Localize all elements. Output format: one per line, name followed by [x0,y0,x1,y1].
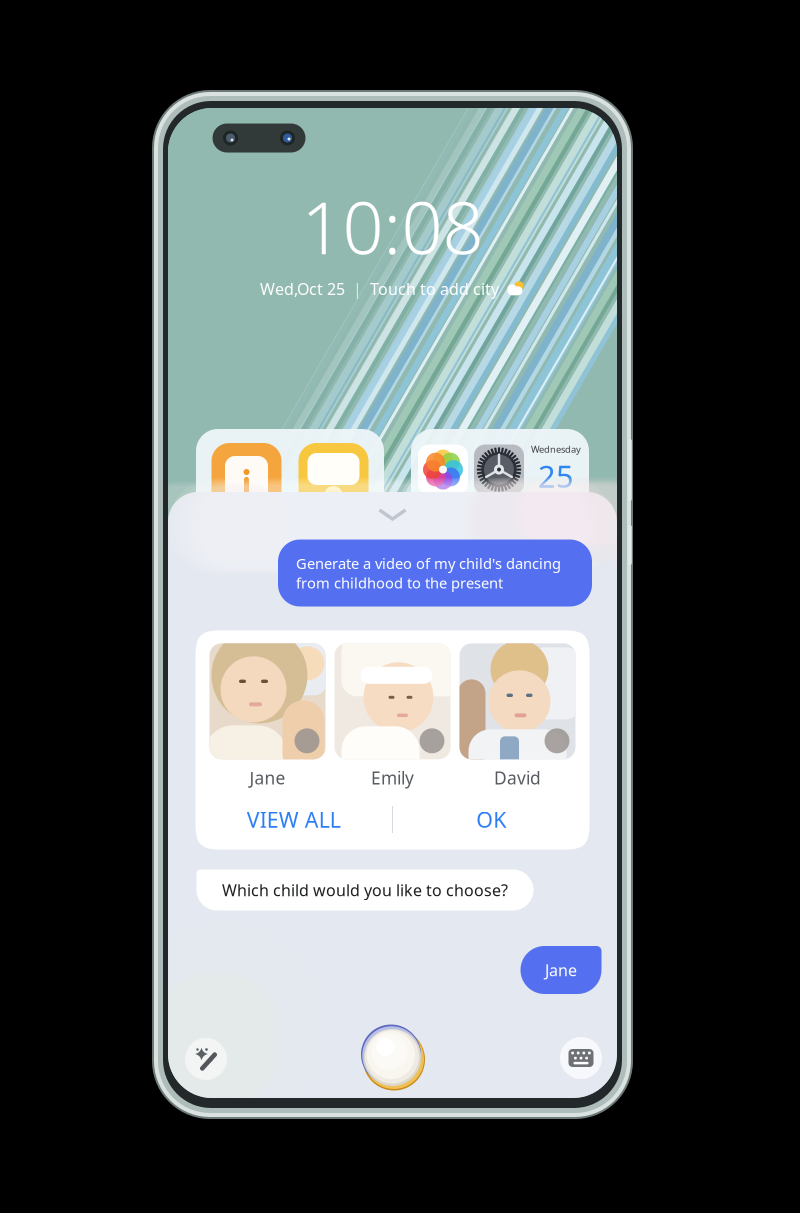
staticText: Wednesday [531,443,581,455]
staticText: Wed,Oct 25 [260,278,345,299]
button[interactable] [196,429,384,521]
staticText: Generate a video of my child's dancing f… [296,553,561,592]
button[interactable]: OK [393,793,589,846]
button[interactable]: David [459,643,575,789]
staticText: VIEW ALL [247,805,341,834]
staticText: | [353,278,362,299]
button[interactable]: Wednesday [411,429,589,521]
staticText: Jane [545,959,577,981]
staticText: OK [476,805,506,834]
staticText: Emily [371,766,414,789]
staticText: Jane [249,766,285,789]
staticText: 10:08 [301,179,483,274]
button[interactable]: VIEW ALL [195,793,392,846]
button[interactable]: Keyboard [560,1037,602,1079]
staticText: Which child would you like to choose? [222,879,508,901]
staticText: Touch to add city [370,278,499,299]
staticText: 25 [538,455,574,496]
button[interactable]: Jane [520,946,601,994]
button[interactable]: Emily [334,643,450,789]
button[interactable]: Jane [209,643,325,789]
button[interactable]: Magic suggestions [185,1038,227,1080]
staticText: David [494,766,541,789]
